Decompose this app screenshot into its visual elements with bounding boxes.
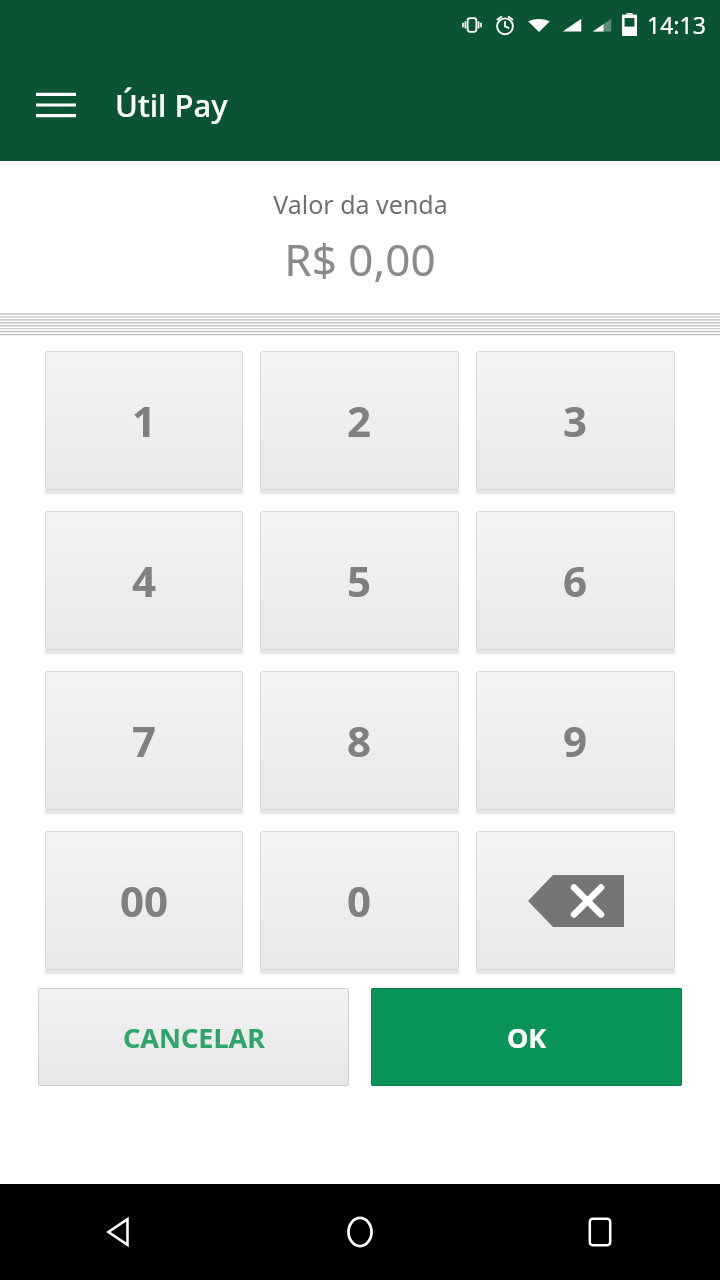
button[interactable]: Back xyxy=(0,1184,240,1280)
button[interactable]: 2 xyxy=(260,351,459,494)
button[interactable]: 7 xyxy=(45,671,243,814)
button[interactable]: 1 xyxy=(45,351,243,494)
button[interactable]: CANCELAR xyxy=(38,988,349,1086)
staticText: 7 xyxy=(132,712,157,769)
staticText: 00 xyxy=(120,872,169,929)
staticText: Útil Pay xyxy=(115,84,228,126)
button[interactable]: Recent apps xyxy=(480,1184,720,1280)
staticText: 3 xyxy=(563,392,588,449)
staticText: 6 xyxy=(563,552,588,609)
button[interactable]: 8 xyxy=(260,671,459,814)
button[interactable]: Open navigation menu xyxy=(18,67,94,143)
staticText: 9 xyxy=(563,712,588,769)
staticText: 14:13 xyxy=(647,9,706,40)
staticText: 0 xyxy=(347,872,372,929)
button[interactable]: 5 xyxy=(260,511,459,654)
staticText: OK xyxy=(507,1019,547,1056)
button[interactable]: 3 xyxy=(476,351,675,494)
staticText: CANCELAR xyxy=(123,1019,265,1056)
staticText: 2 xyxy=(347,392,372,449)
button[interactable]: Backspace xyxy=(476,831,675,974)
staticText: 5 xyxy=(347,552,372,609)
button[interactable]: 9 xyxy=(476,671,675,814)
button[interactable]: Home xyxy=(240,1184,480,1280)
staticText: 4 xyxy=(132,552,157,609)
staticText: 8 xyxy=(347,712,372,769)
button[interactable]: 0 xyxy=(260,831,459,974)
button[interactable]: 6 xyxy=(476,511,675,654)
button[interactable]: OK xyxy=(371,988,682,1086)
button[interactable]: 00 xyxy=(45,831,243,974)
staticText: 1 xyxy=(132,392,157,449)
staticText: Valor da venda xyxy=(273,187,448,221)
button[interactable]: 4 xyxy=(45,511,243,654)
staticText: R$ 0,00 xyxy=(284,229,436,289)
